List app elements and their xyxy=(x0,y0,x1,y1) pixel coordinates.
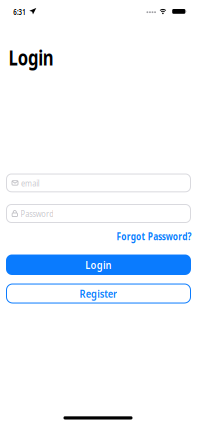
button[interactable]: Register xyxy=(6,283,191,303)
button[interactable]: Forgot Password? xyxy=(95,229,191,243)
button[interactable]: email xyxy=(6,173,191,192)
staticText: email xyxy=(21,177,44,189)
staticText: Login xyxy=(8,43,66,71)
button[interactable]: Password xyxy=(6,204,191,223)
button[interactable]: Login xyxy=(6,254,191,275)
staticText: Forgot Password? xyxy=(95,229,191,243)
staticText: Register xyxy=(77,286,120,301)
staticText: 6:31 xyxy=(13,7,30,17)
staticText: Login xyxy=(83,258,113,272)
staticText: Password xyxy=(20,207,62,220)
